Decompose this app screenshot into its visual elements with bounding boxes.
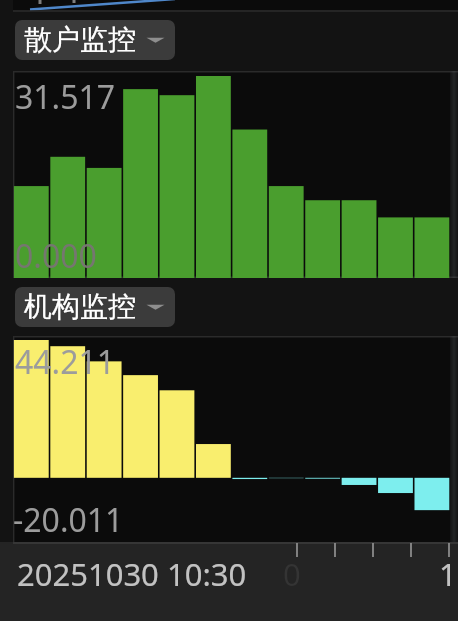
button[interactable]: 机构监控 bbox=[15, 287, 175, 327]
staticText: 44.211 bbox=[15, 340, 116, 384]
staticText: 机构监控 bbox=[24, 289, 136, 324]
staticText: 1 bbox=[439, 553, 457, 595]
staticText: 20251030 10:30 bbox=[17, 553, 247, 595]
staticText: 0 bbox=[283, 553, 301, 595]
staticText: 31.517 bbox=[15, 75, 116, 119]
button[interactable]: 散户监控 bbox=[15, 20, 175, 60]
other: Expand 散户监控 bbox=[145, 29, 166, 50]
other: Expand 机构监控 bbox=[145, 296, 166, 317]
staticText: 0.000 bbox=[15, 234, 97, 278]
staticText: -20.011 bbox=[13, 498, 124, 542]
staticText: 散户监控 bbox=[24, 22, 136, 57]
button[interactable]: 44.211 bbox=[0, 336, 458, 542]
button[interactable]: 31.517 bbox=[0, 71, 458, 278]
